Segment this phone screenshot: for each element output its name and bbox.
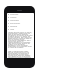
staticText: Settings (10, 25, 18, 28)
staticText: Messages (10, 19, 19, 22)
button[interactable]: Settings (7, 25, 34, 28)
staticText: Sed ut perspiciatis unde omnis iste natu… (8, 50, 33, 58)
staticText: Activity (10, 16, 17, 19)
button[interactable]: Help (7, 28, 34, 31)
button[interactable]: Messages (7, 19, 34, 22)
staticText: Documents (10, 22, 21, 25)
staticText: Overview (10, 13, 19, 16)
button[interactable]: Documents (7, 22, 34, 25)
staticText: Help (10, 28, 15, 31)
button[interactable]: Overview (7, 13, 34, 16)
staticText: Lorem ipsum dolor sit amet, consectetur … (8, 31, 33, 49)
button[interactable]: Activity (7, 16, 34, 19)
